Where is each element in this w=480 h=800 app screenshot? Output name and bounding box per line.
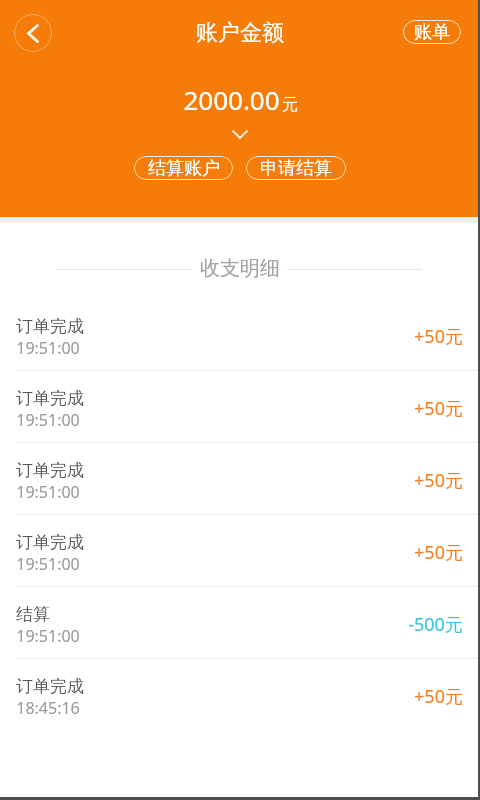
staticText: 2000.00 [183,82,280,117]
staticText: +50元 [414,396,463,421]
button[interactable]: 订单完成 [0,443,480,515]
staticText: 19:51:00 [16,625,80,647]
staticText: 订单完成 [16,388,84,409]
button[interactable]: 展开明细 [220,124,260,144]
staticText: 18:45:16 [16,697,80,719]
button[interactable]: 订单完成 [0,659,480,731]
staticText: +50元 [414,684,463,709]
staticText: 19:51:00 [16,337,80,359]
staticText: +50元 [414,540,463,565]
staticText: 订单完成 [16,676,84,697]
staticText: 订单完成 [16,316,84,337]
staticText: 结算账户 [148,157,220,180]
staticText: 19:51:00 [16,553,80,575]
staticText: 申请结算 [260,157,332,180]
staticText: 订单完成 [16,532,84,553]
staticText: 账单 [414,21,450,44]
staticText: 元 [282,95,298,115]
staticText: +50元 [414,324,463,349]
button[interactable]: 账单 [403,20,461,44]
button[interactable]: 订单完成 [0,299,480,371]
staticText: 账户金额 [196,19,284,47]
button[interactable]: Back [14,14,52,52]
staticText: 订单完成 [16,460,84,481]
button[interactable]: 结算 [0,587,480,659]
staticText: 19:51:00 [16,481,80,503]
button[interactable]: 订单完成 [0,515,480,587]
button[interactable]: 订单完成 [0,371,480,443]
button[interactable]: 申请结算 [246,156,346,180]
staticText: 收支明细 [200,256,280,281]
staticText: 结算 [16,604,50,625]
button[interactable]: 结算账户 [134,156,233,180]
staticText: -500元 [408,612,463,637]
staticText: 19:51:00 [16,409,80,431]
staticText: +50元 [414,468,463,493]
